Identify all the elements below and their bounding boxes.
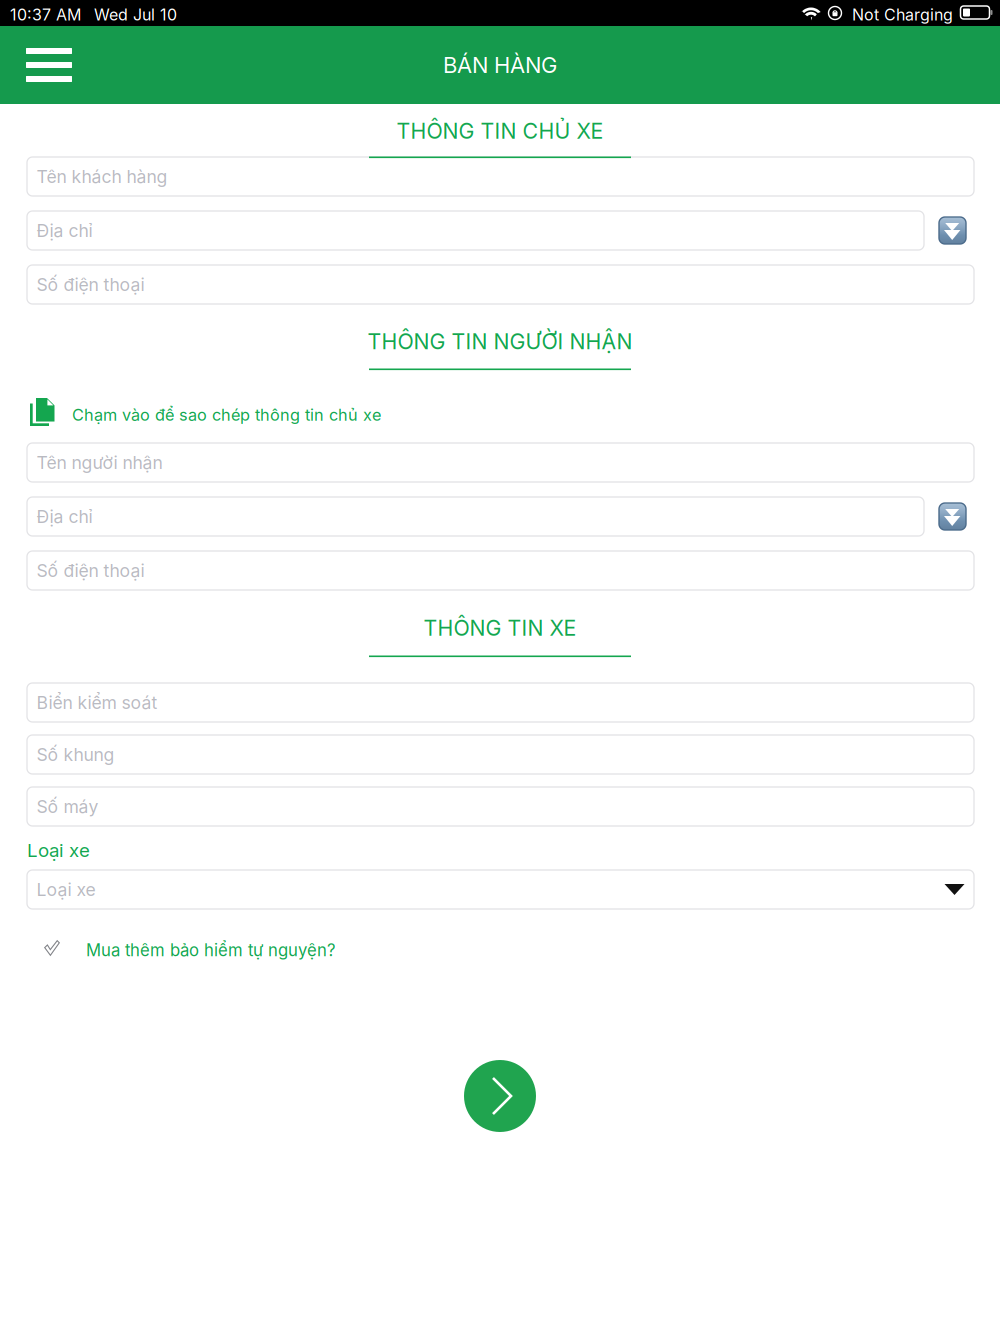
staticText: Wed Jul 10 xyxy=(94,5,177,24)
staticText: Mua thêm bảo hiểm tự nguyện? xyxy=(86,940,336,960)
button[interactable]: Tên khách hàng xyxy=(27,157,974,196)
staticText: Loại xe xyxy=(27,839,90,862)
staticText: Địa chỉ xyxy=(36,506,92,527)
button[interactable]: Mua thêm bảo hiểm tự nguyện? xyxy=(38,932,338,966)
button[interactable]: Địa chỉ xyxy=(27,497,924,536)
staticText: BÁN HÀNG xyxy=(443,52,557,78)
button[interactable]: Số máy xyxy=(27,787,974,826)
staticText: Loại xe xyxy=(36,879,95,900)
staticText: Chạm vào để sao chép thông tin chủ xe xyxy=(72,405,381,425)
button[interactable]: Biển kiểm soát xyxy=(27,683,974,722)
button[interactable]: Loại xe xyxy=(27,870,974,909)
button[interactable]: Menu xyxy=(23,41,99,97)
button[interactable]: Chọn địa chỉ xyxy=(939,503,966,530)
staticText: 10:37 AM xyxy=(10,5,81,24)
staticText: Số máy xyxy=(36,796,98,817)
button[interactable]: Số điện thoại xyxy=(27,265,974,304)
staticText: Not Charging xyxy=(852,5,953,24)
staticText: Tên người nhận xyxy=(36,452,162,473)
button[interactable]: Tên người nhận xyxy=(27,443,974,482)
button[interactable]: Chọn địa chỉ xyxy=(939,217,966,244)
staticText: Địa chỉ xyxy=(36,220,92,241)
staticText: THÔNG TIN CHỦ XE xyxy=(396,118,603,144)
button[interactable]: Địa chỉ xyxy=(27,211,924,250)
staticText: Biển kiểm soát xyxy=(36,692,157,713)
staticText: THÔNG TIN XE xyxy=(423,615,576,641)
button[interactable]: Tiếp tục xyxy=(464,1060,536,1132)
button[interactable]: Số khung xyxy=(27,735,974,774)
button[interactable]: Số điện thoại xyxy=(27,551,974,590)
staticText: Tên khách hàng xyxy=(36,166,167,187)
button[interactable]: Chạm vào để sao chép thông tin chủ xe xyxy=(26,394,408,432)
staticText: THÔNG TIN NGƯỜI NHẬN xyxy=(367,329,632,354)
staticText: Số khung xyxy=(36,744,114,765)
staticText: Số điện thoại xyxy=(36,560,144,581)
staticText: Số điện thoại xyxy=(36,274,144,295)
